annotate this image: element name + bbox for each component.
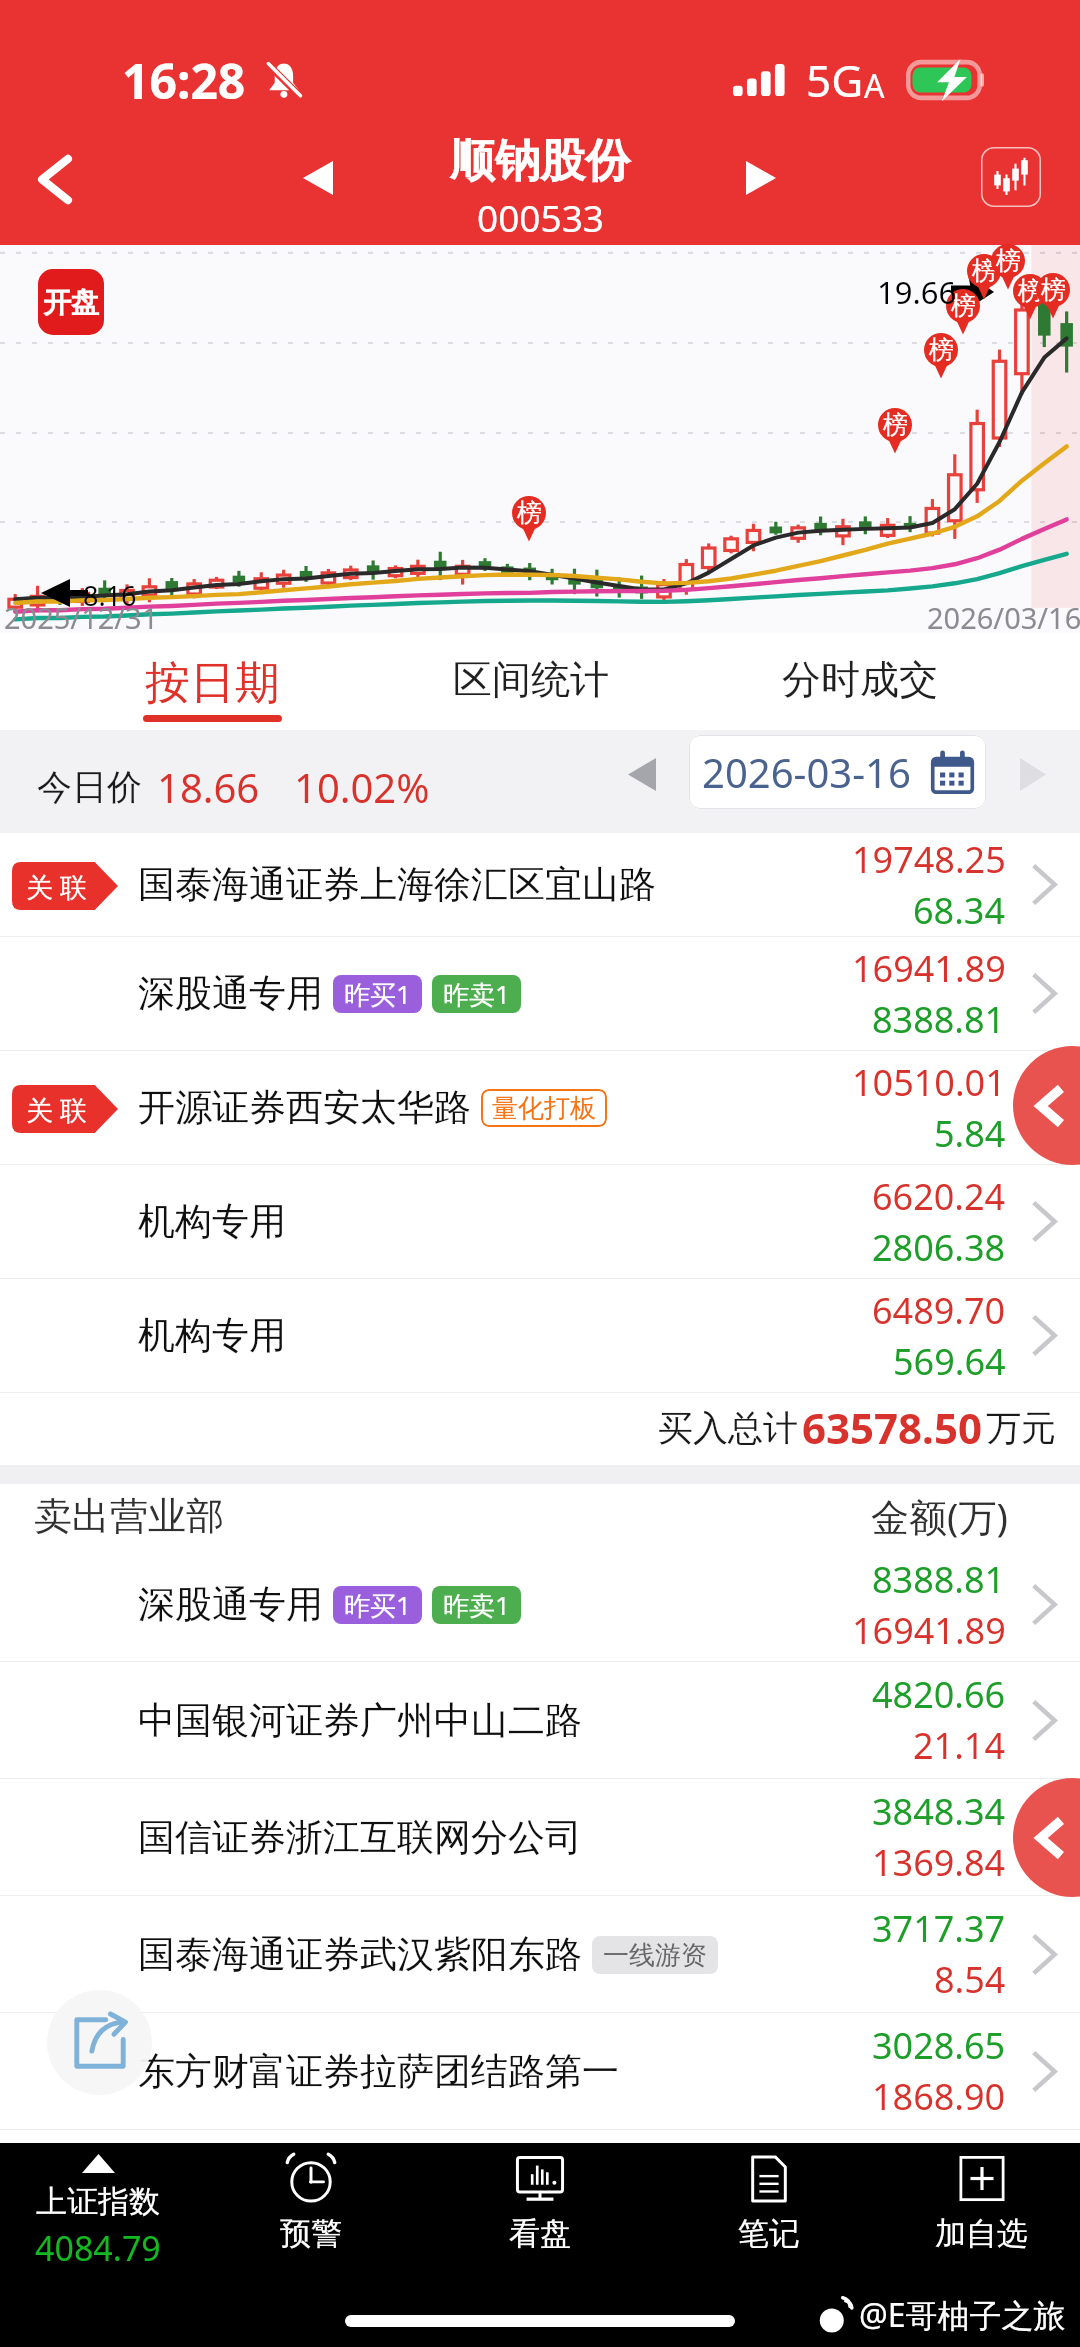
staticText: 2026-03-16 [702,745,911,799]
button[interactable]: 2026-03-16 [689,735,986,809]
staticText: 上证指数 [36,2182,160,2221]
staticText: 关 联 [26,868,88,905]
staticText: 2025/12/31 [4,598,159,637]
staticText: 8.54 [934,1955,1006,2004]
staticText: 深股通专用 [138,1581,323,1628]
staticText: @E哥柚子之旅 [859,2293,1066,2337]
button[interactable]: 关 联 [0,833,1080,936]
staticText: 国泰海通证券武汉紫阳东路 [138,1931,582,1978]
button[interactable]: Share [47,1990,152,2095]
button[interactable]: 国信证券浙江互联网分公司 [0,1779,1080,1895]
staticText: 16941.89 [852,944,1006,993]
staticText: 榜 [972,255,997,286]
staticText: 买入总计 [658,1406,798,1450]
staticText: 一线游资 [603,1939,707,1972]
staticText: 机构专用 [138,1198,286,1245]
staticText: 看盘 [509,2214,571,2253]
staticText: 国信证券浙江互联网分公司 [138,1814,582,1861]
staticText: 按日期 [145,655,280,712]
button[interactable]: 上证指数 [0,2143,196,2291]
button[interactable]: 笔记 [654,2143,883,2291]
button[interactable]: Previous day [612,744,672,804]
button[interactable]: Chart settings [981,147,1041,207]
staticText: 4820.66 [872,1670,1006,1719]
staticText: 预警 [280,2214,342,2253]
button[interactable]: 看盘 [425,2143,654,2291]
staticText: 区间统计 [453,655,609,704]
staticText: 63578.50 [802,1399,982,1456]
staticText: 4084.79 [35,2225,161,2271]
staticText: 笔记 [738,2214,800,2253]
button[interactable]: Expand panel [1013,1046,1080,1165]
button[interactable]: 深股通专用 [0,937,1080,1050]
staticText: 18.66 [157,760,260,814]
staticText: 5.84 [934,1109,1006,1158]
staticText: 深股通专用 [138,970,323,1017]
button[interactable]: 深股通专用 [0,1548,1080,1661]
staticText: 21.14 [913,1721,1006,1770]
staticText: 2026/03/16 [927,598,1080,637]
staticText: 分时成交 [782,655,938,704]
staticText: 19.66 [877,271,957,313]
staticText: 金额(万) [871,1490,1008,1542]
button[interactable]: 预警 [196,2143,425,2291]
staticText: 1369.84 [872,1838,1006,1887]
staticText: 榜 [951,290,976,321]
button[interactable]: 关 联 [0,1051,1080,1164]
staticText: 000533 [477,192,604,242]
staticText: 6489.70 [872,1286,1006,1335]
staticText: 10.02% [294,760,430,814]
staticText: 榜 [996,245,1021,276]
staticText: 68.34 [913,886,1006,935]
button[interactable]: 加自选 [883,2143,1080,2291]
staticText: 3717.37 [872,1904,1006,1953]
staticText: 机构专用 [138,1312,286,1359]
staticText: 8388.81 [872,1555,1006,1604]
staticText: 19748.25 [852,835,1006,884]
staticText: 量化打板 [492,1092,596,1125]
staticText: 3848.34 [872,1787,1006,1836]
button[interactable]: 按日期 [122,633,302,730]
staticText: 6620.24 [872,1172,1006,1221]
staticText: 榜 [883,409,908,440]
staticText: 关 联 [26,1091,88,1128]
staticText: 5G [806,50,864,110]
button[interactable]: 分时成交 [740,633,980,730]
button[interactable]: Back [0,120,110,245]
staticText: 东方财富证券拉萨团结路第一 [138,2048,619,2095]
button[interactable]: Next day [1003,744,1063,804]
button[interactable]: 开盘 [38,269,104,335]
staticText: 昨卖1 [443,1587,510,1623]
button[interactable]: 国泰海通证券武汉紫阳东路 [0,1896,1080,2012]
staticText: 昨卖1 [443,976,510,1012]
button[interactable]: 东方财富证券拉萨团结路第一 [0,2013,1080,2129]
staticText: 10510.01 [852,1058,1006,1107]
staticText: 卖出营业部 [34,1492,224,1540]
button[interactable]: 机构专用 [0,1165,1080,1278]
staticText: 2806.38 [872,1223,1006,1272]
staticText: 国泰海通证券上海徐汇区宜山路 [138,861,656,908]
staticText: 今日价 [37,765,142,809]
staticText: 昨买1 [344,1587,411,1623]
staticText: 开源证券西安太华路 [138,1084,471,1131]
button[interactable]: 机构专用 [0,1279,1080,1392]
staticText: 榜 [1041,274,1066,305]
button[interactable]: Previous stock [276,136,360,220]
staticText: 开盘 [43,285,99,320]
staticText: A [864,64,885,108]
button[interactable]: 区间统计 [411,633,651,730]
staticText: 榜 [1018,275,1043,306]
staticText: 顺钠股份 [450,133,630,190]
staticText: 8.16 [83,577,137,614]
staticText: 8388.81 [872,995,1006,1044]
button[interactable]: Next stock [719,136,803,220]
staticText: 昨买1 [344,976,411,1012]
staticText: 榜 [929,334,954,365]
staticText: 1868.90 [872,2072,1006,2121]
button[interactable]: Expand panel [1013,1778,1080,1897]
staticText: 万元 [986,1406,1056,1450]
staticText: 榜 [517,497,542,528]
button[interactable]: 中国银河证券广州中山二路 [0,1662,1080,1778]
staticText: 中国银河证券广州中山二路 [138,1697,582,1744]
staticText: 569.64 [893,1337,1006,1386]
